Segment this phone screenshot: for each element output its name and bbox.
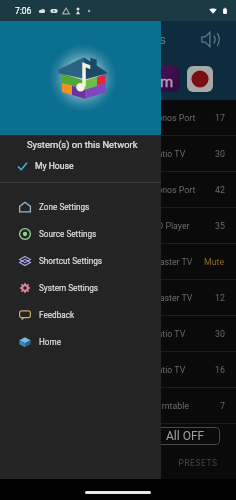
button[interactable]: BD Player: [0, 208, 236, 243]
staticText: Feedback: [39, 310, 75, 320]
button[interactable]: Shortcut Settings: [0, 247, 161, 274]
staticText: 42: [215, 185, 225, 195]
staticText: Mute: [204, 257, 225, 267]
button[interactable]: Volume: [201, 30, 220, 49]
staticText: Patio TV: [152, 329, 186, 339]
button[interactable]: Master TV: [0, 280, 236, 315]
staticText: Master TV: [152, 293, 193, 303]
button[interactable]: My House: [0, 154, 161, 178]
staticText: 35: [215, 221, 225, 231]
staticText: Master TV: [152, 257, 193, 267]
staticText: All OFF: [166, 429, 205, 443]
button[interactable]: All OFF: [151, 427, 220, 445]
staticText: Patio TV: [152, 365, 186, 375]
staticText: System(s) on this Network: [27, 139, 138, 150]
staticText: m: [160, 73, 174, 91]
button[interactable]: Radio: [187, 66, 213, 92]
button[interactable]: Feedback: [0, 301, 161, 328]
button[interactable]: Patio TV: [0, 352, 236, 387]
button[interactable]: Master TV: [0, 244, 236, 279]
button[interactable]: Patio TV: [0, 316, 236, 351]
staticText: BD Player: [152, 221, 190, 231]
button[interactable]: MusicCast: [154, 66, 180, 92]
staticText: Home: [39, 337, 62, 347]
staticText: 7: [220, 401, 225, 411]
staticText: Shortcut Settings: [39, 256, 103, 266]
button[interactable]: Turntable: [0, 388, 236, 423]
button[interactable]: Source Settings: [0, 220, 161, 247]
staticText: Zones: [130, 32, 166, 47]
button[interactable]: Sonos Port: [0, 172, 236, 207]
staticText: PRESETS: [160, 458, 236, 468]
button[interactable]: Home: [0, 328, 161, 355]
staticText: 12: [215, 293, 225, 303]
button[interactable]: Sonos Port: [0, 100, 236, 135]
staticText: 30: [215, 329, 225, 339]
staticText: Sonos Port: [152, 113, 196, 123]
staticText: Sonos Port: [152, 185, 196, 195]
staticText: My House: [35, 161, 74, 171]
staticText: Zone Settings: [39, 202, 90, 212]
staticText: Turntable: [152, 401, 189, 411]
staticText: Source Settings: [39, 229, 97, 239]
staticText: 16: [215, 365, 225, 375]
staticText: 17: [215, 113, 225, 123]
button[interactable]: Patio TV: [0, 136, 236, 171]
button[interactable]: System Settings: [0, 274, 161, 301]
button[interactable]: Zone Settings: [0, 193, 161, 220]
staticText: 7:06: [15, 6, 32, 16]
staticText: 30: [215, 149, 225, 159]
staticText: System Settings: [39, 283, 99, 293]
staticText: Patio TV: [152, 149, 186, 159]
